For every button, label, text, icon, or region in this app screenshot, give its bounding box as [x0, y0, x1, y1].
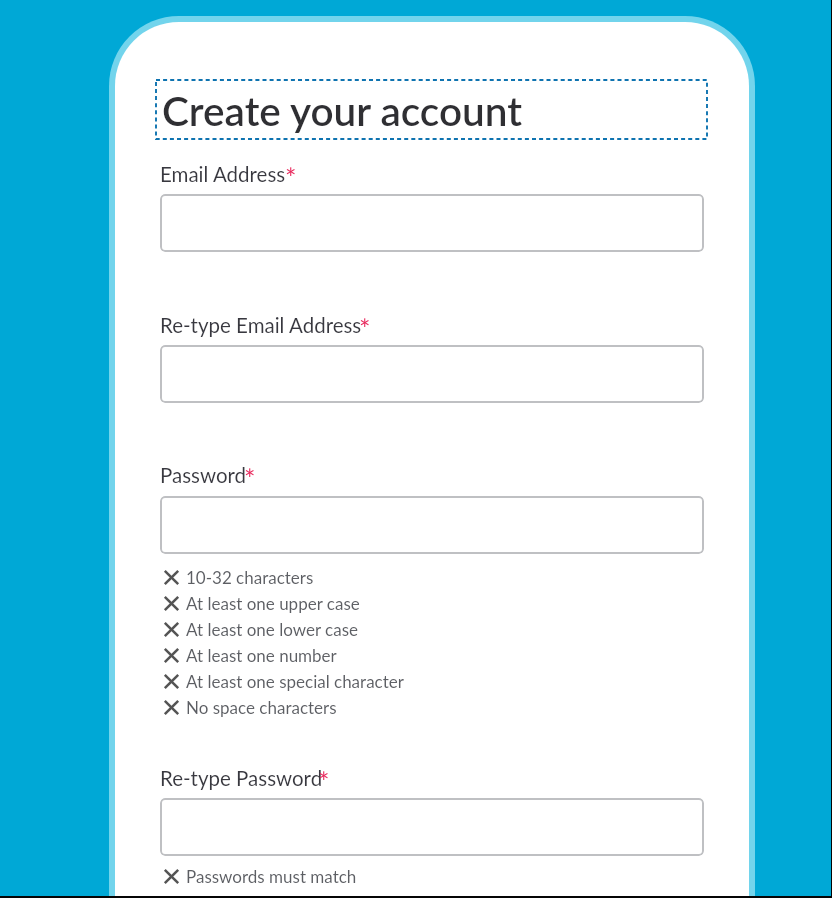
button[interactable]: Password: [160, 496, 704, 554]
button[interactable]: Re-type Password: [160, 798, 704, 856]
staticText: No space characters: [186, 697, 337, 717]
button[interactable]: Email Address: [160, 194, 704, 252]
staticText: At least one number: [186, 645, 337, 665]
staticText: *: [318, 765, 330, 797]
button[interactable]: Create your account: [156, 80, 707, 139]
button[interactable]: Re-type Email Address: [160, 345, 704, 403]
staticText: Password: [160, 463, 247, 488]
staticText: At least one special character: [186, 671, 404, 691]
staticText: At least one lower case: [186, 619, 358, 639]
staticText: Re-type Password: [160, 766, 323, 791]
staticText: 10-32 characters: [186, 567, 314, 587]
staticText: *: [244, 462, 256, 494]
staticText: Create your account: [162, 86, 523, 135]
staticText: *: [285, 161, 297, 193]
staticText: At least one upper case: [186, 593, 360, 613]
staticText: Email Address: [160, 162, 286, 187]
staticText: Re-type Email Address: [160, 313, 362, 338]
staticText: Passwords must match: [186, 866, 357, 886]
staticText: *: [359, 312, 371, 344]
